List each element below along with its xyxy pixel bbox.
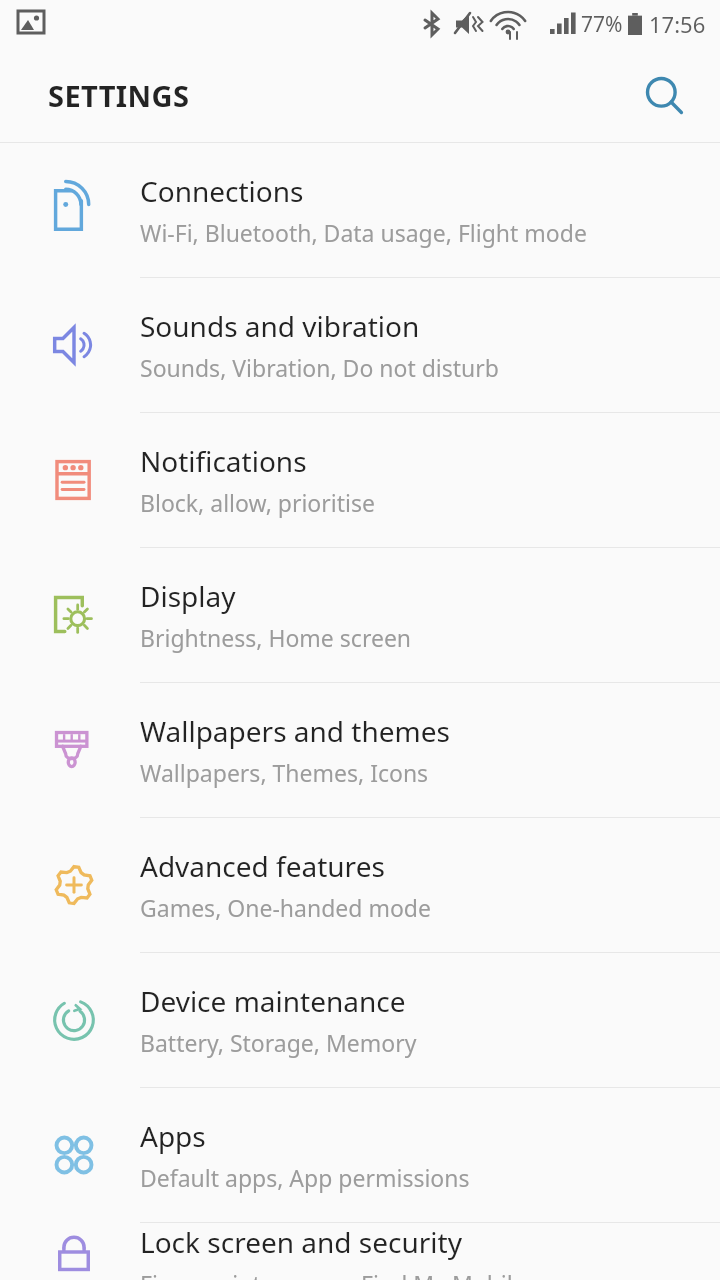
- button[interactable]: Apps: [0, 1088, 720, 1222]
- staticText: Wallpapers, Themes, Icons: [140, 757, 429, 788]
- staticText: Default apps, App permissions: [140, 1162, 470, 1193]
- staticText: Fingerprint scanner, Find My Mobile: [140, 1268, 526, 1280]
- button[interactable]: Connections: [0, 143, 720, 277]
- staticText: Advanced features: [140, 847, 385, 885]
- staticText: Sounds, Vibration, Do not disturb: [140, 352, 499, 383]
- staticText: Wi-Fi, Bluetooth, Data usage, Flight mod…: [140, 217, 587, 248]
- staticText: Brightness, Home screen: [140, 622, 412, 653]
- button[interactable]: Sounds and vibration: [0, 278, 720, 412]
- staticText: Lock screen and security: [140, 1223, 462, 1261]
- button[interactable]: Search: [634, 65, 696, 127]
- staticText: Block, allow, prioritise: [140, 487, 375, 518]
- staticText: Games, One-handed mode: [140, 892, 431, 923]
- staticText: Wallpapers and themes: [140, 712, 450, 750]
- button[interactable]: Advanced features: [0, 818, 720, 952]
- staticText: Connections: [140, 172, 304, 210]
- button[interactable]: Device maintenance: [0, 953, 720, 1087]
- staticText: SETTINGS: [48, 76, 190, 115]
- staticText: Display: [140, 577, 236, 615]
- button[interactable]: Display: [0, 548, 720, 682]
- staticText: Battery, Storage, Memory: [140, 1027, 417, 1058]
- staticText: Apps: [140, 1117, 206, 1155]
- button[interactable]: Lock screen and security: [0, 1223, 720, 1280]
- staticText: 17:56: [649, 9, 706, 39]
- button[interactable]: Wallpapers and themes: [0, 683, 720, 817]
- staticText: Sounds and vibration: [140, 307, 420, 345]
- staticText: 77%: [581, 10, 623, 39]
- button[interactable]: Notifications: [0, 413, 720, 547]
- staticText: Notifications: [140, 442, 307, 480]
- staticText: Device maintenance: [140, 982, 406, 1020]
